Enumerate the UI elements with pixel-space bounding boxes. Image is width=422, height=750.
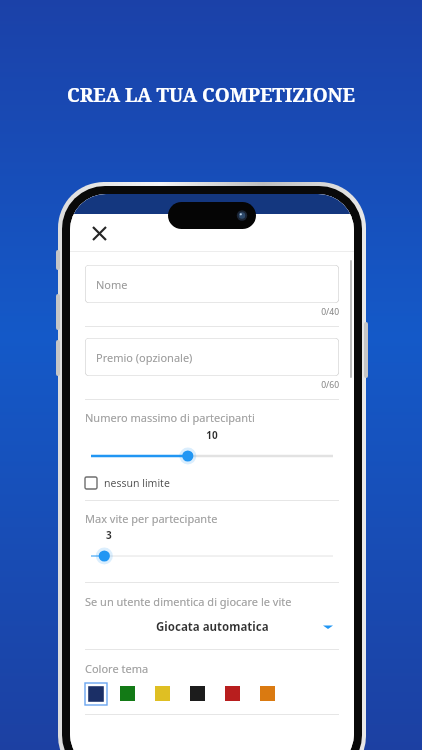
staticText: 0/60: [85, 379, 339, 391]
button[interactable]: nessun limite: [85, 476, 170, 490]
staticText: Premio (opzionale): [96, 350, 193, 365]
staticText: CREA LA TUA COMPETIZIONE: [0, 82, 422, 108]
staticText: Colore tema: [85, 661, 149, 676]
staticText: 10: [85, 428, 339, 442]
button[interactable]: [85, 446, 339, 466]
staticText: 0/40: [85, 306, 339, 318]
staticText: Nome: [96, 277, 128, 292]
button[interactable]: [85, 546, 339, 566]
button[interactable]: Colore tema: [85, 683, 107, 705]
button[interactable]: Giocata automatica: [85, 616, 339, 638]
staticText: 3: [106, 528, 112, 542]
staticText: Max vite per partecipante: [85, 511, 218, 526]
button[interactable]: Premio (opzionale): [85, 338, 339, 376]
staticText: Numero massimo di partecipanti: [85, 410, 255, 425]
staticText: Se un utente dimentica di giocare le vit…: [85, 594, 292, 609]
staticText: Giocata automatica: [156, 619, 269, 635]
staticText: nessun limite: [104, 476, 170, 490]
button[interactable]: Nome: [85, 265, 339, 303]
button[interactable]: Chiudi: [84, 218, 114, 248]
